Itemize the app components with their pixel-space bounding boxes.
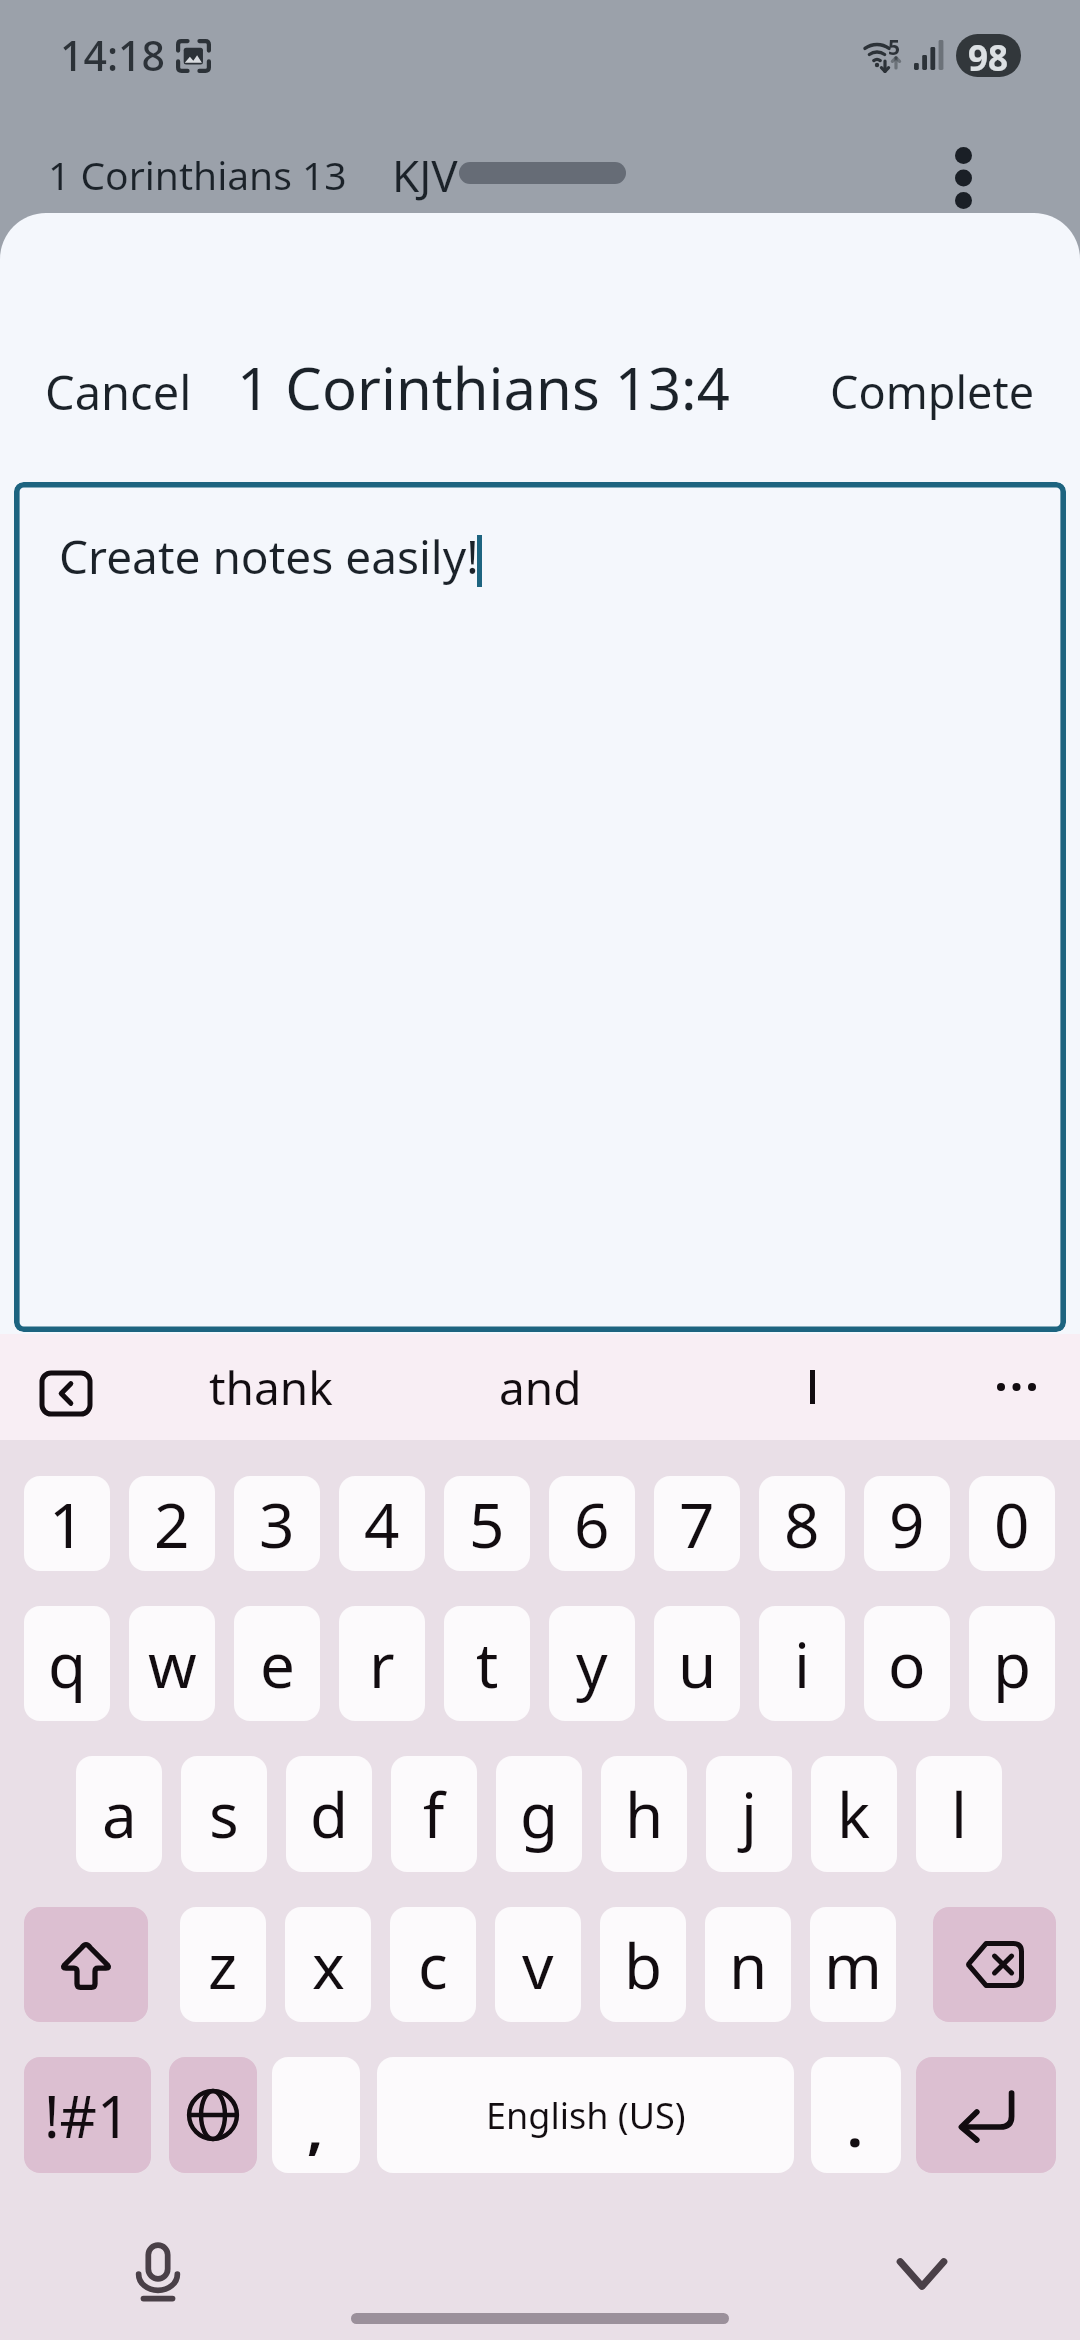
button[interactable]: thank — [161, 1352, 381, 1422]
button[interactable]: q — [24, 1606, 110, 1721]
staticText: u — [678, 1622, 717, 1706]
button[interactable]: Period — [811, 2057, 901, 2173]
button[interactable]: Note text field — [14, 482, 1066, 1332]
button[interactable]: Symbols — [24, 2057, 151, 2173]
staticText: c — [418, 1923, 448, 2007]
staticText: e — [260, 1622, 295, 1706]
button[interactable]: g — [496, 1756, 582, 1872]
button[interactable]: 0 — [969, 1476, 1055, 1571]
button[interactable]: Comma — [272, 2057, 360, 2173]
staticText: v — [522, 1923, 554, 2007]
button[interactable]: m — [810, 1907, 896, 2022]
button[interactable]: Shift — [24, 1907, 148, 2022]
button[interactable]: and — [430, 1352, 650, 1422]
staticText: p — [993, 1622, 1032, 1706]
button[interactable]: n — [705, 1907, 791, 2022]
staticText: !#1 — [44, 2076, 131, 2155]
staticText: 0 — [994, 1482, 1030, 1566]
staticText: r — [369, 1622, 395, 1706]
button[interactable]: l — [916, 1756, 1002, 1872]
staticText: 7 — [679, 1482, 715, 1566]
staticText: Create notes easily! — [59, 525, 479, 588]
staticText: 2 — [154, 1482, 190, 1566]
staticText: 1 Corinthians 13:4 — [237, 348, 730, 427]
button[interactable]: 4 — [339, 1476, 425, 1571]
staticText: 98 — [968, 34, 1009, 77]
staticText: 8 — [784, 1482, 820, 1566]
button[interactable]: z — [180, 1907, 266, 2022]
staticText: 14:18 — [60, 27, 165, 83]
staticText: q — [48, 1622, 87, 1706]
staticText: x — [312, 1923, 345, 2007]
staticText: and — [499, 1356, 582, 1419]
staticText: l — [951, 1772, 967, 1856]
button[interactable]: Cancel — [16, 323, 216, 435]
button[interactable]: e — [234, 1606, 320, 1721]
button[interactable]: 9 — [864, 1476, 950, 1571]
button[interactable]: d — [286, 1756, 372, 1872]
staticText: 1 — [49, 1482, 85, 1566]
button[interactable]: Space — [377, 2057, 794, 2173]
staticText: 1 Corinthians 13 — [48, 148, 347, 201]
button[interactable]: f — [391, 1756, 477, 1872]
staticText: a — [102, 1772, 137, 1856]
button[interactable]: v — [495, 1907, 581, 2022]
button[interactable]: 2 — [129, 1476, 215, 1571]
staticText: 6 — [574, 1482, 610, 1566]
staticText: s — [209, 1772, 239, 1856]
staticText: 9 — [889, 1482, 925, 1566]
button[interactable]: x — [285, 1907, 371, 2022]
button[interactable]: More suggestions — [966, 1353, 1066, 1421]
button[interactable]: o — [864, 1606, 950, 1721]
staticText: 4 — [364, 1482, 400, 1566]
button[interactable] — [701, 1343, 921, 1431]
staticText: 5 — [888, 33, 901, 62]
staticText: English (US) — [486, 2091, 686, 2140]
button[interactable]: u — [654, 1606, 740, 1721]
button[interactable]: Enter — [916, 2057, 1056, 2173]
button[interactable]: j — [706, 1756, 792, 1872]
button[interactable]: Previous suggestions — [42, 1373, 90, 1414]
button[interactable]: Backspace — [933, 1907, 1056, 2022]
button[interactable]: a — [76, 1756, 162, 1872]
button[interactable]: Hide keyboard — [896, 2252, 948, 2296]
button[interactable]: Change language — [169, 2057, 257, 2173]
button[interactable]: h — [601, 1756, 687, 1872]
button[interactable]: s — [181, 1756, 267, 1872]
button[interactable]: r — [339, 1606, 425, 1721]
button[interactable]: p — [969, 1606, 1055, 1721]
staticText: y — [576, 1622, 608, 1706]
staticText: g — [520, 1772, 559, 1856]
staticText: w — [148, 1622, 197, 1706]
staticText: Complete — [830, 361, 1035, 422]
staticText: b — [624, 1923, 663, 2007]
staticText: m — [824, 1923, 882, 2007]
button[interactable]: More options — [925, 140, 1001, 216]
staticText: k — [837, 1772, 871, 1856]
button[interactable]: w — [129, 1606, 215, 1721]
staticText: z — [208, 1923, 238, 2007]
staticText: 5 — [469, 1482, 505, 1566]
button[interactable]: 5 — [444, 1476, 530, 1571]
staticText: o — [888, 1622, 926, 1706]
staticText: h — [625, 1772, 664, 1856]
staticText: n — [729, 1923, 768, 2007]
button[interactable]: y — [549, 1606, 635, 1721]
button[interactable]: Complete — [801, 323, 1063, 435]
staticText: i — [794, 1622, 810, 1706]
staticText: t — [476, 1622, 499, 1706]
staticText: f — [423, 1772, 445, 1856]
button[interactable]: 6 — [549, 1476, 635, 1571]
staticText: 3 — [259, 1482, 295, 1566]
button[interactable]: Voice input — [136, 2244, 180, 2302]
button[interactable]: b — [600, 1907, 686, 2022]
staticText: thank — [209, 1356, 333, 1419]
button[interactable]: 3 — [234, 1476, 320, 1571]
button[interactable]: c — [390, 1907, 476, 2022]
button[interactable]: 1 — [24, 1476, 110, 1571]
button[interactable]: k — [811, 1756, 897, 1872]
button[interactable]: 7 — [654, 1476, 740, 1571]
button[interactable]: t — [444, 1606, 530, 1721]
button[interactable]: 8 — [759, 1476, 845, 1571]
button[interactable]: i — [759, 1606, 845, 1721]
